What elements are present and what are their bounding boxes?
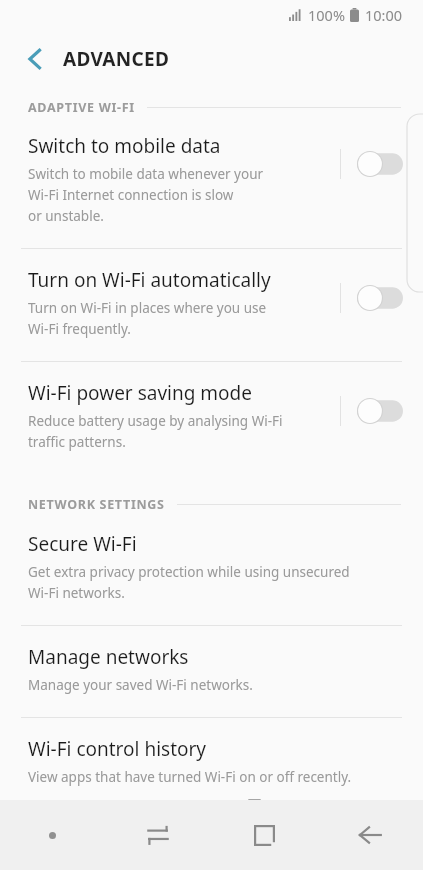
staticText: Manage networks: [28, 644, 189, 670]
button[interactable]: Recent apps: [105, 800, 211, 870]
staticText: Switch to mobile data: [28, 133, 221, 159]
button[interactable]: Toggle Wi-Fi power saving mode: [357, 398, 403, 424]
staticText: Switch to mobile data whenever your: [28, 165, 264, 183]
staticText: traffic patterns.: [28, 433, 126, 451]
button[interactable]: Home: [211, 800, 317, 870]
staticText: Manage your saved Wi-Fi networks.: [28, 676, 253, 694]
staticText: 100%: [308, 5, 345, 25]
button[interactable]: Turn on Wi-Fi automatically: [0, 267, 423, 341]
staticText: Wi-Fi frequently.: [28, 320, 131, 338]
staticText: Wi-Fi Internet connection is slow: [28, 186, 234, 204]
staticText: NETWORK SETTINGS: [28, 496, 165, 513]
staticText: View apps that have turned Wi-Fi on or o…: [28, 768, 352, 786]
button[interactable]: Back: [14, 38, 56, 80]
staticText: ADVANCED: [63, 46, 170, 72]
button[interactable]: Manage networks: [0, 644, 423, 697]
staticText: Get extra privacy protection while using…: [28, 563, 350, 581]
button[interactable]: Switch to mobile data: [0, 133, 423, 228]
button[interactable]: Keyboard indicator: [0, 800, 105, 870]
staticText: Secure Wi-Fi: [28, 531, 137, 557]
staticText: Wi-Fi power saving mode: [28, 380, 252, 406]
staticText: Reduce battery usage by analysing Wi-Fi: [28, 412, 283, 430]
button[interactable]: Wi-Fi power saving mode: [0, 380, 423, 454]
staticText: Turn on Wi-Fi automatically: [28, 267, 271, 293]
staticText: Wi-Fi networks.: [28, 584, 125, 602]
button[interactable]: Toggle Switch to mobile data: [357, 151, 403, 177]
staticText: ADAPTIVE WI-FI: [28, 99, 135, 116]
button[interactable]: Secure Wi-Fi: [0, 531, 423, 605]
staticText: or unstable.: [28, 207, 104, 225]
button[interactable]: Back: [317, 800, 423, 870]
button[interactable]: Wi-Fi control history: [0, 736, 423, 789]
staticText: 10:00: [365, 5, 403, 25]
staticText: Wi-Fi control history: [28, 736, 207, 762]
button[interactable]: Toggle Turn on Wi-Fi automatically: [357, 285, 403, 311]
staticText: Turn on Wi-Fi in places where you use: [28, 299, 267, 317]
